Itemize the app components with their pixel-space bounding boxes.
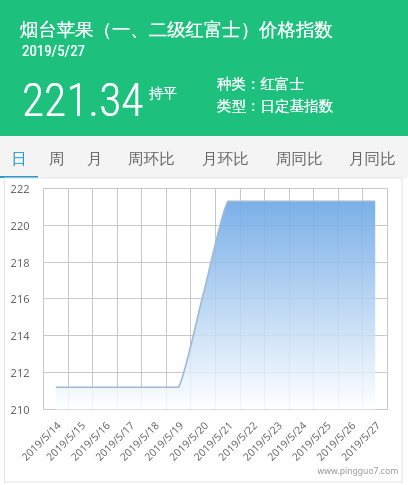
button[interactable]: 月同比	[336, 136, 408, 178]
staticText: 月环比	[202, 149, 249, 169]
staticText: 月同比	[349, 149, 396, 169]
button[interactable]: 周	[38, 136, 76, 178]
button[interactable]: 日	[0, 136, 38, 178]
staticText: 周环比	[128, 149, 175, 169]
staticText: 种类：红富士	[217, 75, 304, 93]
staticText: 月	[87, 149, 103, 169]
staticText: 2019/5/27	[22, 42, 85, 60]
staticText: 类型：日定基指数	[217, 97, 333, 115]
staticText: 周	[49, 149, 65, 169]
staticText: 持平	[149, 85, 177, 103]
staticText: 烟台苹果（一、二级红富士）价格指数	[20, 18, 333, 41]
staticText: 221.34	[22, 74, 144, 127]
button[interactable]: 月	[76, 136, 114, 178]
button[interactable]: 周同比	[262, 136, 336, 178]
button[interactable]: 周环比	[114, 136, 188, 178]
staticText: 日	[11, 149, 27, 169]
button[interactable]: 月环比	[188, 136, 262, 178]
staticText: 周同比	[276, 149, 323, 169]
